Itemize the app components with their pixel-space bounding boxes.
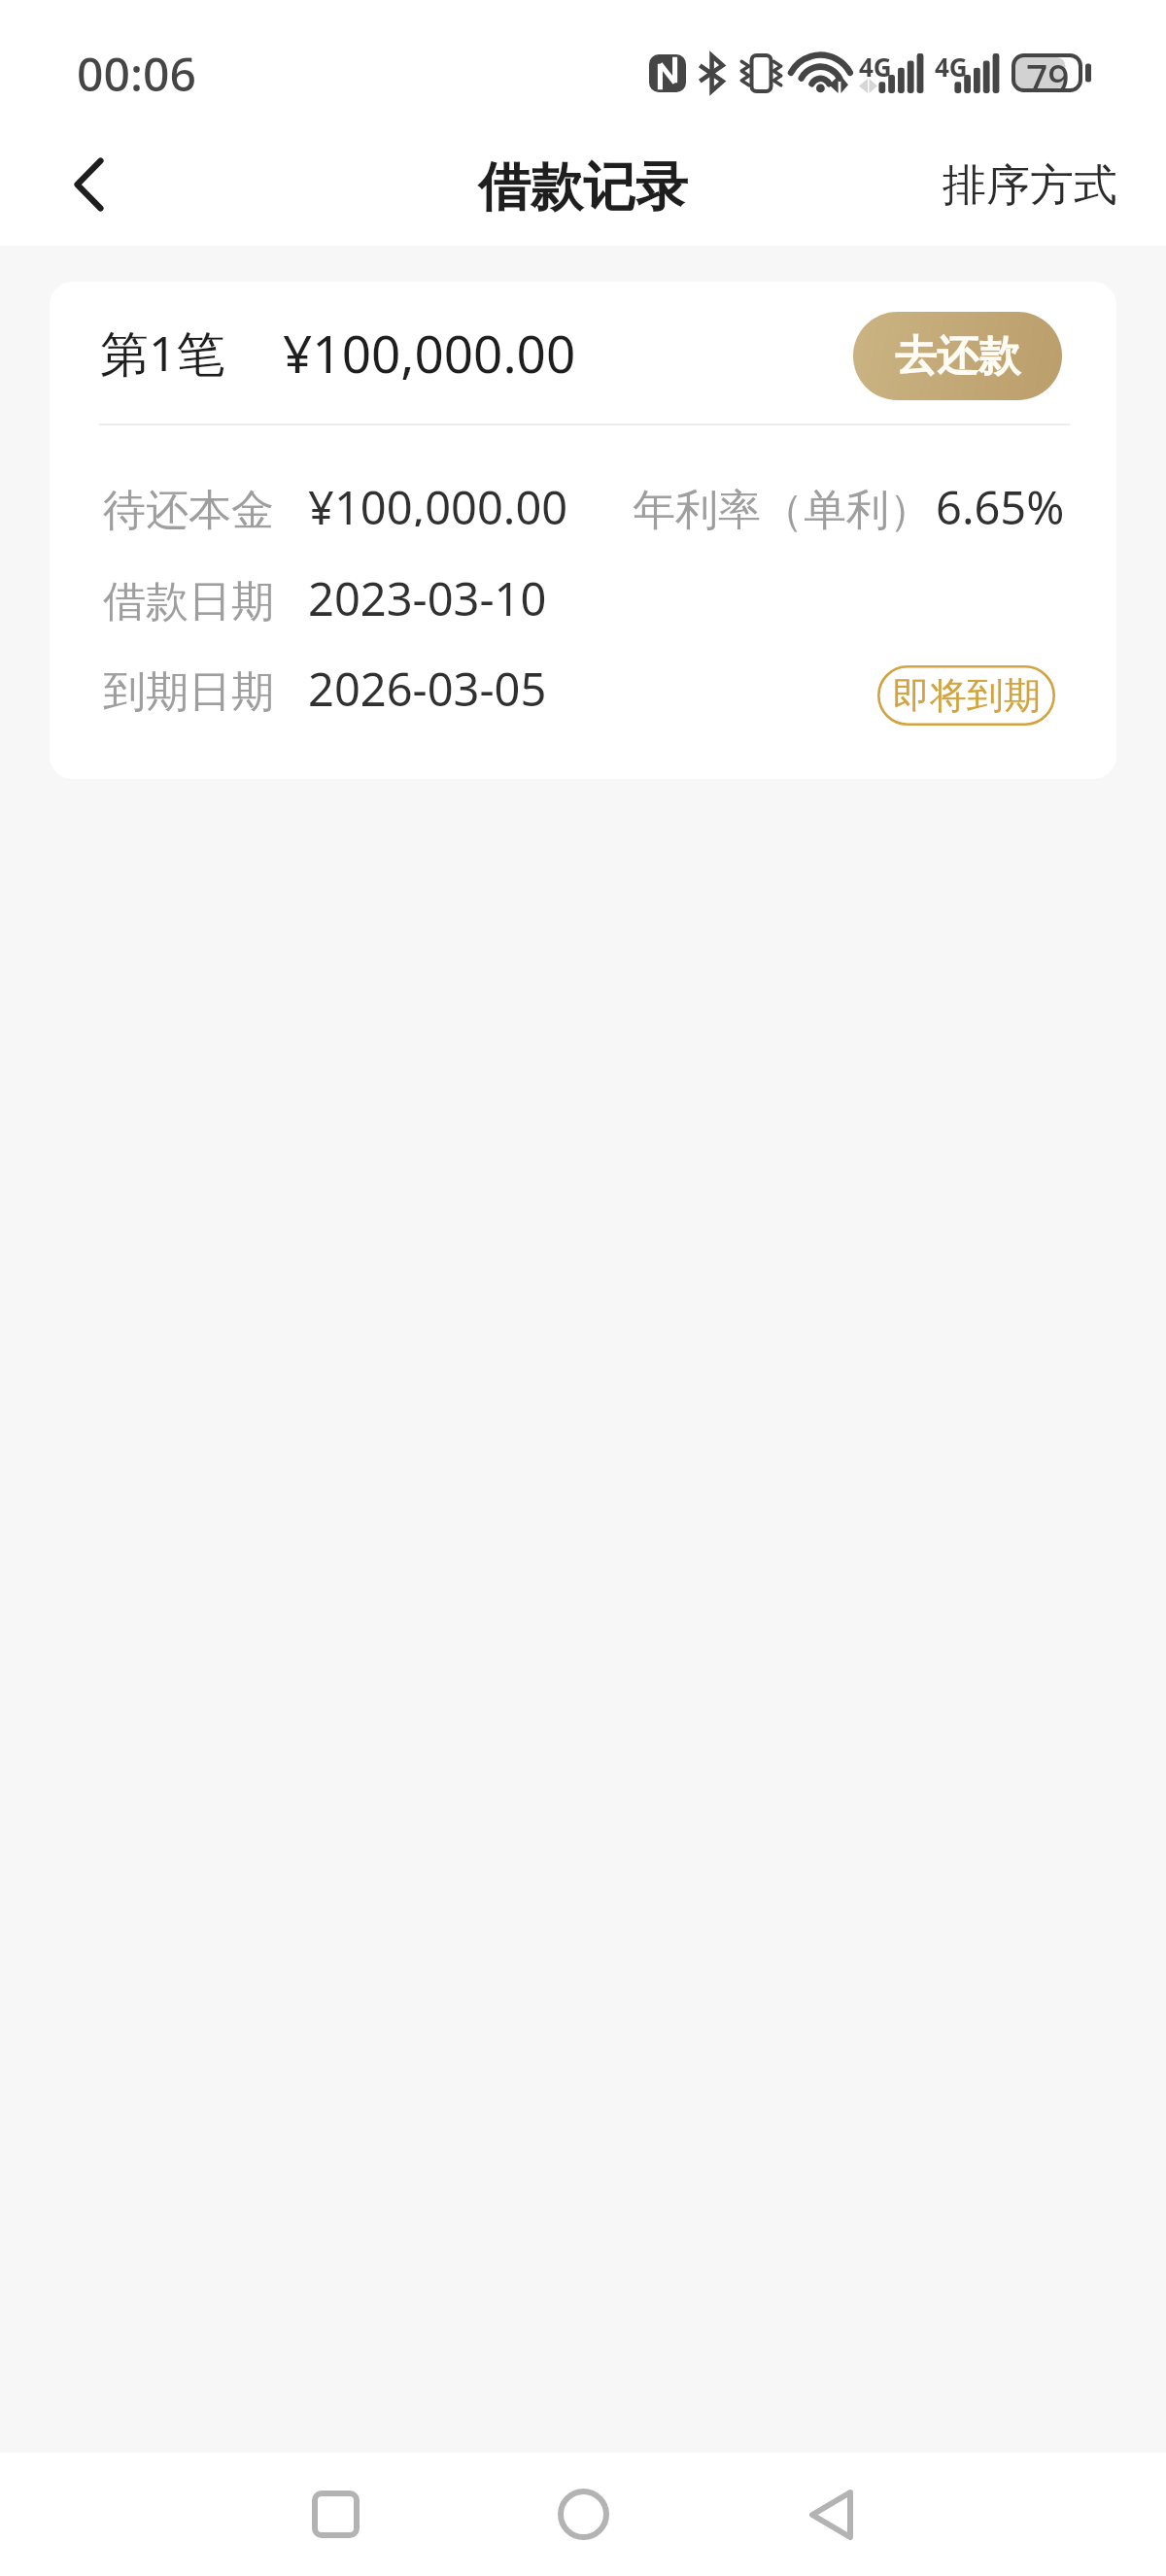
staticText: 借款日期 [103, 575, 274, 626]
staticText: 4G [859, 50, 892, 84]
staticText: 4G [935, 50, 968, 84]
staticText: 年利率（单利） [633, 484, 932, 534]
staticText: 2026-03-05 [308, 658, 547, 708]
staticText: 79 [1026, 52, 1070, 91]
button[interactable]: 第1笔 [50, 282, 1116, 779]
button[interactable]: 最近任务 [257, 2453, 413, 2576]
staticText: 00:06 [77, 42, 196, 105]
button[interactable]: 返回 [0, 122, 146, 246]
staticText: 借款记录 [478, 154, 688, 220]
staticText: 待还本金 [103, 484, 274, 534]
staticText: ¥100,000.00 [308, 476, 568, 526]
staticText: 第1笔 [100, 320, 225, 386]
button[interactable]: 去还款 [853, 312, 1062, 400]
button[interactable]: 主页 [505, 2453, 661, 2576]
staticText: 去还款 [895, 330, 1020, 383]
staticText: ¥100,000.00 [283, 318, 576, 388]
staticText: 即将到期 [893, 672, 1041, 719]
button[interactable]: 返回 [753, 2453, 909, 2576]
button[interactable]: 排序方式 [893, 122, 1166, 246]
staticText: 6.65% [936, 476, 1065, 526]
staticText: 2023-03-10 [308, 567, 547, 618]
staticText: 排序方式 [943, 158, 1117, 214]
staticText: 到期日期 [103, 665, 274, 716]
button[interactable]: 即将到期 [877, 665, 1055, 726]
